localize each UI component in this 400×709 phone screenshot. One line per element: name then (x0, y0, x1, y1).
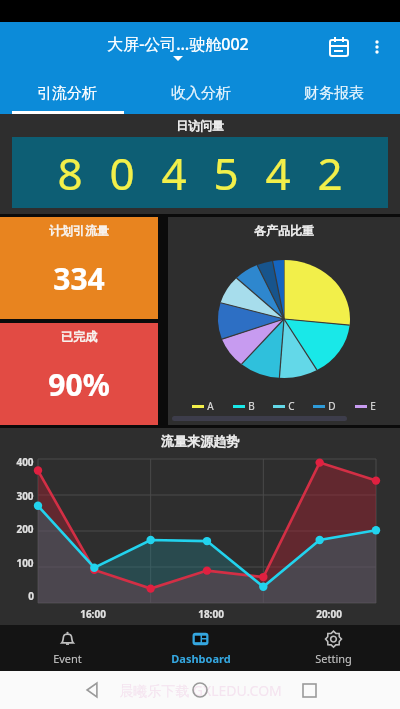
staticText: 引流分析 (37, 84, 97, 103)
staticText: Setting (315, 651, 352, 666)
staticText: B (248, 399, 255, 413)
staticText: 已完成 (61, 329, 97, 344)
button[interactable]: Recents (292, 673, 326, 707)
staticText: 400 (16, 455, 34, 469)
staticText: 334 (53, 258, 105, 299)
staticText: 各产品比重 (254, 223, 314, 238)
button[interactable]: 计划引流量 (0, 217, 158, 319)
staticText: 18:00 (198, 607, 224, 621)
staticText: A (207, 399, 214, 413)
button[interactable]: More options (360, 30, 394, 64)
staticText: 100 (16, 556, 34, 570)
button[interactable]: Dashboard (134, 625, 267, 671)
button[interactable]: Event (0, 625, 134, 671)
staticText: C (288, 399, 295, 413)
staticText: 90% (48, 364, 110, 405)
staticText: Dashboard (171, 651, 231, 666)
button[interactable]: 各产品比重 (168, 217, 400, 425)
staticText: D (328, 399, 336, 413)
staticText: 财务报表 (304, 84, 364, 103)
staticText: 8 (57, 143, 83, 203)
staticText: 0 (28, 589, 34, 603)
staticText: Event (53, 651, 82, 666)
staticText: 300 (16, 489, 34, 503)
button[interactable]: Home (183, 673, 217, 707)
staticText: 日访问量 (176, 118, 224, 133)
staticText: 大屏-公司…驶舱002 (107, 33, 249, 55)
button[interactable]: 财务报表 (267, 72, 400, 114)
button[interactable]: 收入分析 (134, 72, 267, 114)
staticText: 流量来源趋势 (161, 433, 239, 449)
staticText: 0 (109, 143, 135, 203)
staticText: 收入分析 (171, 84, 231, 103)
button[interactable]: 已完成 (0, 323, 158, 425)
staticText: 16:00 (80, 607, 106, 621)
button[interactable]: Setting (267, 625, 400, 671)
staticText: 5 (213, 143, 239, 203)
staticText: 4 (161, 143, 187, 203)
staticText: 20:00 (316, 607, 342, 621)
button[interactable]: Calendar (322, 30, 356, 64)
button[interactable]: Back (75, 673, 109, 707)
staticText: 200 (16, 522, 34, 536)
staticText: 晨曦乐下载 GXLEDU.COM (119, 681, 282, 700)
staticText: 4 (265, 143, 291, 203)
staticText: 2 (317, 143, 343, 203)
staticText: E (370, 399, 376, 413)
button[interactable]: 引流分析 (0, 72, 134, 114)
staticText: 计划引流量 (49, 223, 109, 238)
